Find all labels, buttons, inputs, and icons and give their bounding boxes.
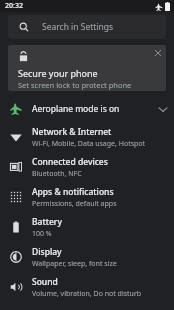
button[interactable]: Sound: [0, 272, 174, 302]
staticText: Wallpaper, sleep, font size: [32, 259, 117, 269]
staticText: 20:32: [5, 1, 23, 11]
staticText: Permissions, default apps: [32, 199, 117, 209]
button[interactable]: Connected devices: [0, 152, 174, 182]
button[interactable]: Search in Settings: [8, 15, 166, 39]
staticText: 100 %: [32, 229, 52, 239]
staticText: Wi-Fi, Mobile, Data usage, Hotspot: [32, 139, 146, 149]
button[interactable]: Battery: [0, 212, 174, 242]
button[interactable]: Network & Internet: [0, 122, 174, 152]
staticText: Apps & notifications: [32, 186, 114, 198]
staticText: Connected devices: [32, 156, 108, 168]
staticText: Display: [32, 246, 62, 258]
staticText: Battery: [32, 216, 62, 228]
button[interactable]: Aeroplane mode is on: [0, 96, 174, 122]
button[interactable]: Display: [0, 242, 174, 272]
staticText: Search in Settings: [42, 21, 114, 33]
staticText: Volume, vibration, Do not disturb: [32, 289, 142, 299]
button[interactable]: Secure your phone: [8, 45, 166, 91]
staticText: Set screen lock to protect phone: [18, 80, 132, 90]
staticText: Bluetooth, NFC: [32, 169, 82, 179]
button[interactable]: Apps & notifications: [0, 182, 174, 212]
staticText: Secure your phone: [18, 67, 98, 79]
staticText: Aeroplane mode is on: [32, 103, 152, 115]
button[interactable]: Dismiss: [150, 45, 166, 61]
staticText: Network & Internet: [32, 126, 112, 138]
staticText: Sound: [32, 276, 58, 288]
